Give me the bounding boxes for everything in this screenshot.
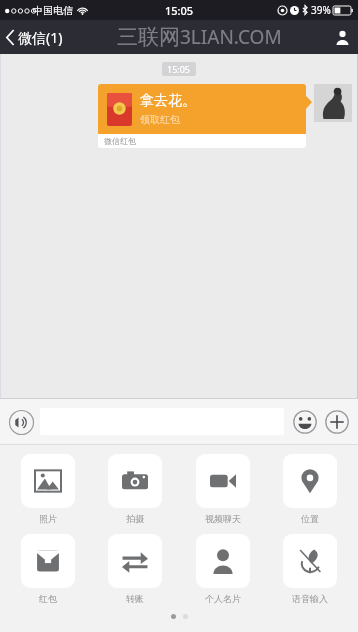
staticText: 微信(1) <box>18 28 63 47</box>
staticText: 拿去花。 <box>140 92 196 110</box>
staticText: 15:05 <box>165 3 194 18</box>
staticText: 转账 <box>126 593 144 604</box>
button[interactable]: 微信(1) <box>0 24 71 51</box>
button[interactable]: 拿去花。 <box>98 84 306 148</box>
staticText: 视频聊天 <box>205 513 241 524</box>
staticText: 微信红包 <box>104 136 136 146</box>
staticText: 15:05 <box>167 63 191 75</box>
button[interactable]: More <box>322 407 352 437</box>
button[interactable]: Voice input <box>6 407 36 437</box>
button[interactable]: 转账 <box>95 534 175 604</box>
button[interactable]: 视频聊天 <box>183 454 263 524</box>
button[interactable]: Avatar <box>314 84 352 122</box>
staticText: 拍摄 <box>126 513 144 524</box>
button[interactable]: 红包 <box>8 534 88 604</box>
button[interactable]: 照片 <box>8 454 88 524</box>
staticText: 红包 <box>39 593 57 604</box>
staticText: 三联网 <box>117 24 180 50</box>
button[interactable]: Emoji <box>290 407 320 437</box>
button[interactable]: 个人名片 <box>183 534 263 604</box>
staticText: 个人名片 <box>205 593 241 604</box>
staticText: 3LIAN.COM <box>180 24 282 50</box>
staticText: 中国电信 <box>33 4 73 17</box>
button[interactable]: 位置 <box>270 454 350 524</box>
staticText: 语音输入 <box>292 593 328 604</box>
staticText: 位置 <box>301 513 319 524</box>
staticText: 照片 <box>39 513 57 524</box>
button[interactable]: 语音输入 <box>270 534 350 604</box>
button[interactable]: Chat info <box>327 24 358 51</box>
staticText: 领取红包 <box>140 113 180 126</box>
staticText: 39% <box>311 3 331 17</box>
button[interactable]: 拍摄 <box>95 454 175 524</box>
